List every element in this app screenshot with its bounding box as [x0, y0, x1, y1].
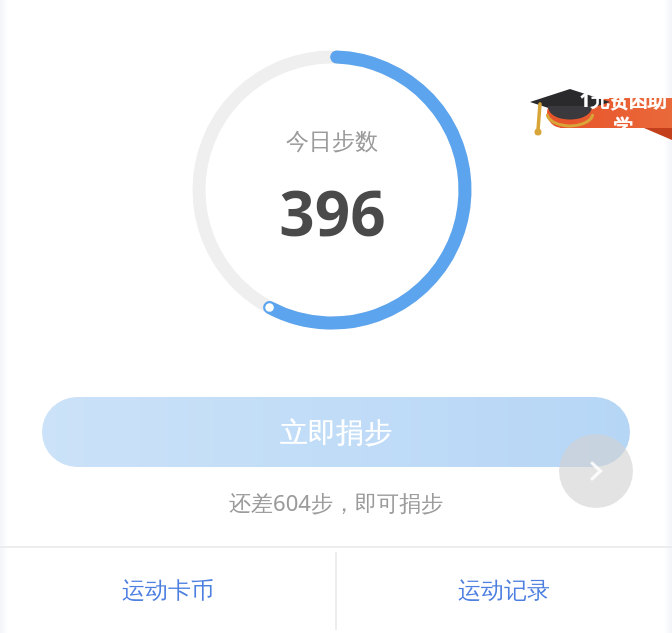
staticText: 1元贫困助学 [574, 87, 672, 139]
staticText: 今日步数 [286, 127, 378, 156]
staticText: 运动记录 [458, 576, 550, 605]
button[interactable]: 运动卡币 [0, 548, 336, 633]
button[interactable]: 1元贫困助学活动 [514, 76, 672, 150]
button[interactable]: 下一步 [559, 434, 633, 508]
button[interactable]: 运动记录 [336, 548, 672, 633]
staticText: 立即捐步 [280, 415, 392, 450]
button[interactable]: 立即捐步 [42, 397, 630, 467]
staticText: 运动卡币 [122, 576, 214, 605]
staticText: 还差604步，即可捐步 [229, 487, 443, 517]
staticText: 396 [279, 170, 386, 254]
